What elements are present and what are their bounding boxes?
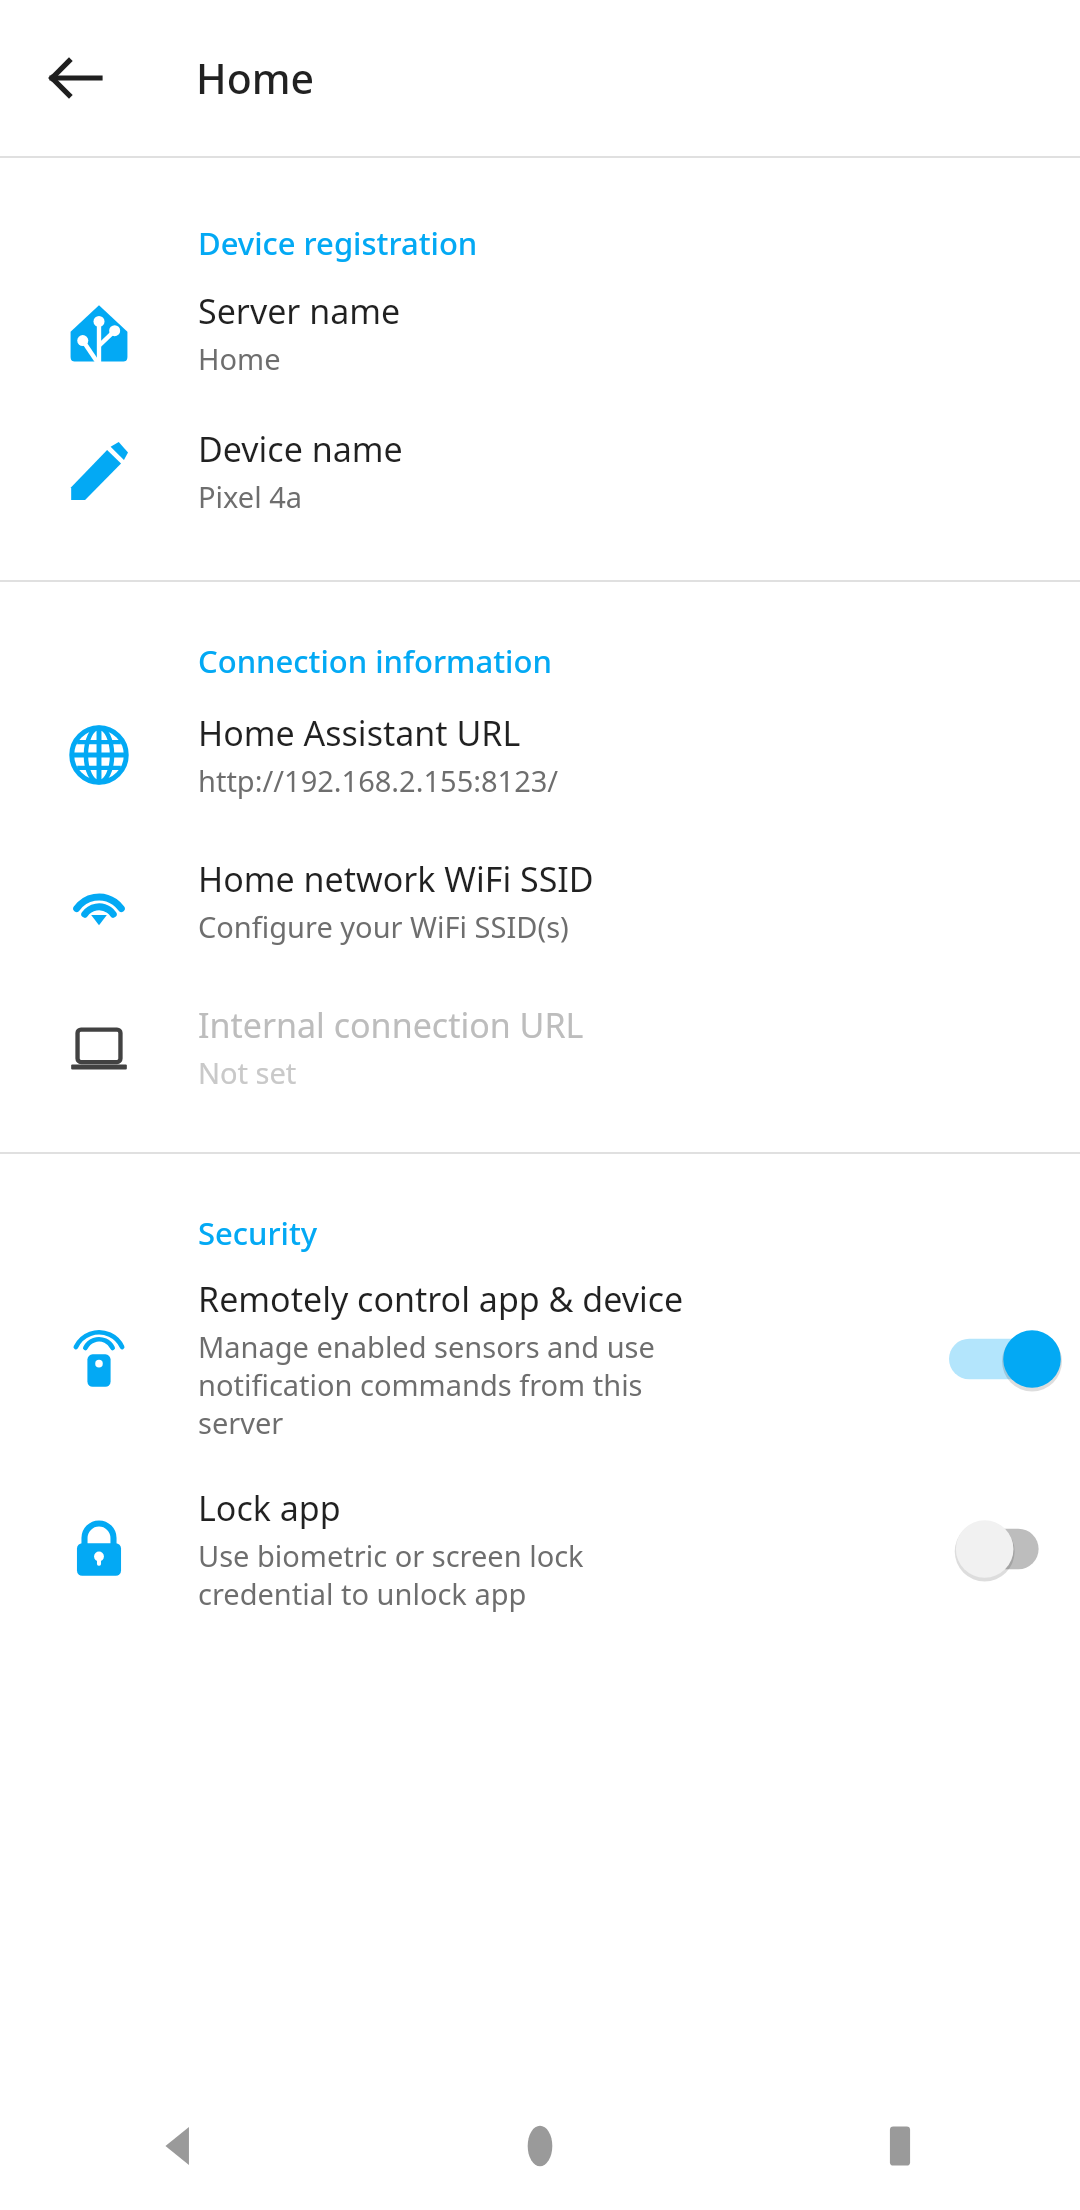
staticText: Use biometric or screen lock credential … (198, 1536, 584, 1613)
staticText: Server name (198, 288, 401, 334)
staticText: Home (196, 50, 315, 106)
button[interactable]: Back (0, 2082, 360, 2210)
button[interactable]: Home Assistant URL (0, 682, 1080, 828)
button[interactable]: Lock app (0, 1464, 1080, 1634)
button[interactable]: Remotely control app & device toggle, on (949, 1323, 1061, 1395)
staticText: Manage enabled sensors and use notificat… (198, 1327, 655, 1442)
staticText: Remotely control app & device (198, 1276, 684, 1322)
staticText: Lock app (198, 1485, 341, 1531)
staticText: Device registration (198, 222, 478, 264)
staticText: Not set (198, 1053, 297, 1092)
button[interactable]: Server name (0, 264, 1080, 402)
button[interactable]: Home network WiFi SSID (0, 828, 1080, 974)
button[interactable]: Device name (0, 402, 1080, 540)
staticText: Configure your WiFi SSID(s) (198, 907, 569, 946)
staticText: Device name (198, 426, 403, 472)
staticText: Connection information (198, 640, 552, 682)
staticText: Home network WiFi SSID (198, 856, 594, 902)
button[interactable]: Remotely control app & device (0, 1254, 1080, 1464)
button[interactable]: Home (360, 2082, 720, 2210)
staticText: http://192.168.2.155:8123/ (198, 761, 559, 800)
staticText: Security (198, 1212, 318, 1254)
button[interactable]: Internal connection URL (0, 974, 1080, 1120)
staticText: Home (198, 339, 281, 378)
staticText: Pixel 4a (198, 477, 303, 516)
button[interactable]: Lock app toggle, off (949, 1513, 1061, 1585)
staticText: Internal connection URL (198, 1002, 584, 1048)
button[interactable]: Back (28, 30, 124, 126)
staticText: Home Assistant URL (198, 710, 521, 756)
button[interactable]: Recent apps (720, 2082, 1080, 2210)
